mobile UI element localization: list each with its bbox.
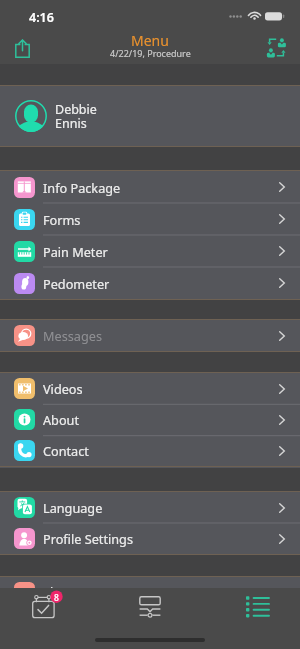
button[interactable]: Debbie Ennis (0, 86, 300, 146)
button[interactable]: Menu list (235, 589, 279, 622)
button[interactable]: Sign Out (0, 577, 300, 588)
button[interactable]: Dashboard (128, 589, 172, 622)
staticText: About (43, 411, 80, 428)
staticText: Language (43, 499, 103, 516)
button[interactable]: About (0, 404, 300, 435)
staticText: Debbie Ennis (55, 101, 97, 131)
button[interactable]: Language (0, 492, 300, 523)
staticText: Contact (43, 442, 89, 459)
staticText: Sign Out (43, 583, 95, 588)
staticText: 4:16 (29, 9, 54, 26)
button[interactable]: Profile Settings (0, 523, 300, 554)
staticText: Menu (131, 31, 169, 50)
staticText: Info Package (43, 179, 121, 196)
staticText: Pedometer (43, 275, 110, 292)
staticText: Forms (43, 211, 81, 228)
staticText: Profile Settings (43, 530, 133, 547)
button[interactable]: Pedometer (0, 267, 300, 299)
button[interactable]: Appointments (26, 589, 70, 622)
button[interactable]: Forms (0, 203, 300, 235)
button[interactable]: Switch user (263, 34, 290, 61)
button[interactable]: Contact (0, 435, 300, 466)
staticText: 4/22/19, Procedure (110, 47, 191, 59)
button[interactable]: Pain Meter (0, 235, 300, 267)
staticText: Messages (43, 327, 102, 344)
staticText: 8 (54, 592, 59, 604)
button[interactable]: Info Package (0, 171, 300, 203)
staticText: Pain Meter (43, 243, 108, 260)
button[interactable]: Videos (0, 373, 300, 404)
button[interactable]: Share (7, 35, 37, 61)
staticText: Videos (43, 380, 83, 397)
button[interactable]: Messages (0, 320, 300, 351)
